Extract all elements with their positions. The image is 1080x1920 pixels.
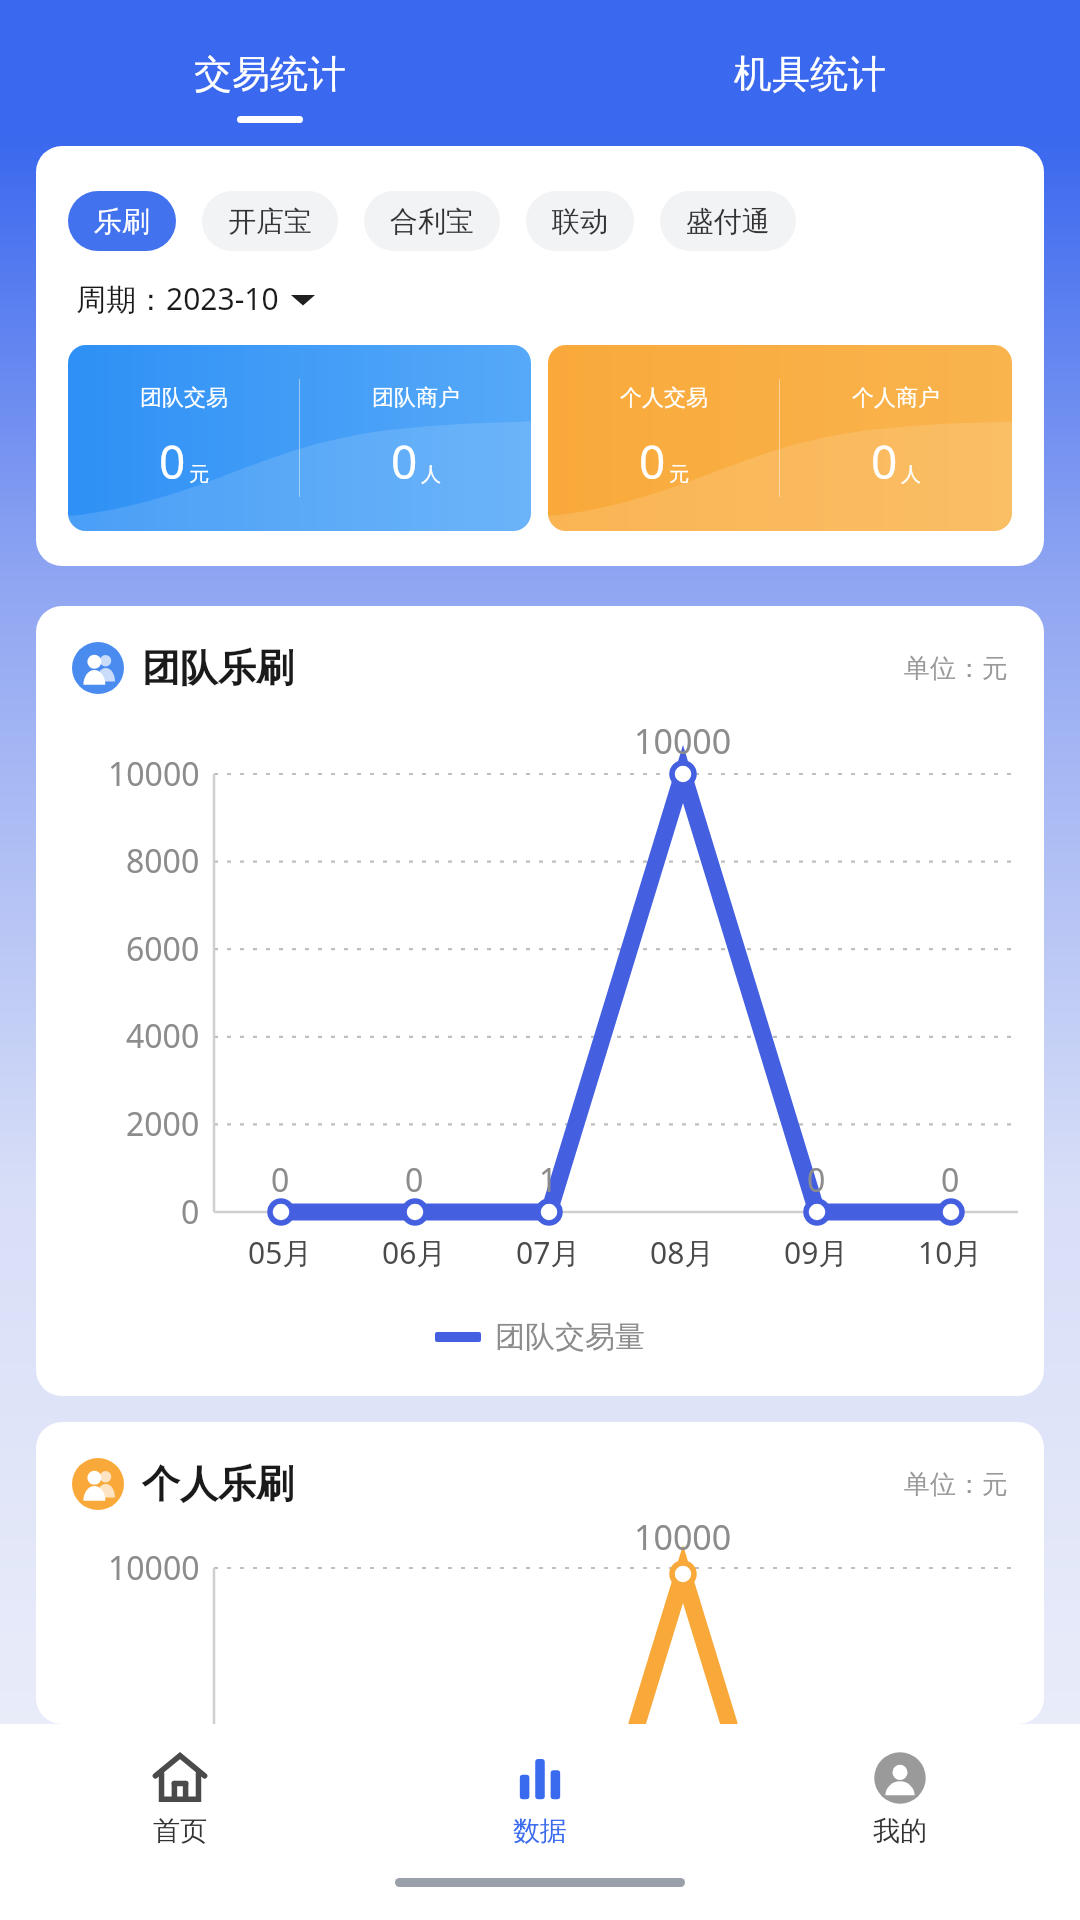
staticText: 盛付通: [686, 204, 770, 239]
staticText: 交易统计: [194, 50, 346, 98]
staticText: 09月: [784, 1232, 849, 1273]
staticText: 机具统计: [734, 50, 886, 98]
button[interactable]: 团队交易: [68, 345, 531, 531]
staticText: 10月: [918, 1232, 983, 1273]
staticText: 1: [539, 1158, 558, 1202]
staticText: 0: [639, 430, 666, 493]
staticText: 6000: [126, 927, 200, 971]
button[interactable]: 合利宝: [364, 191, 500, 251]
staticText: 个人商户: [852, 384, 940, 412]
staticText: 0: [405, 1158, 424, 1202]
staticText: 0: [159, 430, 186, 493]
staticText: 元: [669, 462, 689, 487]
staticText: 团队乐刷: [142, 644, 294, 692]
staticText: 首页: [153, 1814, 207, 1848]
button[interactable]: 周期：2023-10: [76, 278, 315, 319]
staticText: 0: [181, 1190, 200, 1234]
staticText: 合利宝: [390, 204, 474, 239]
staticText: 单位：元: [904, 1468, 1008, 1501]
staticText: 个人乐刷: [142, 1460, 294, 1508]
staticText: 团队交易量: [495, 1318, 645, 1356]
button[interactable]: 乐刷: [68, 191, 176, 251]
button[interactable]: 开店宝: [202, 191, 338, 251]
staticText: 4000: [126, 1014, 200, 1058]
staticText: 联动: [552, 204, 608, 239]
staticText: 团队商户: [372, 384, 460, 412]
button[interactable]: 交易统计: [0, 0, 540, 146]
staticText: 06月: [382, 1232, 447, 1273]
staticText: 开店宝: [228, 204, 312, 239]
staticText: 07月: [516, 1232, 581, 1273]
staticText: 0: [807, 1158, 826, 1202]
staticText: 10000: [108, 752, 200, 796]
staticText: 10000: [634, 718, 732, 764]
staticText: 2000: [126, 1102, 200, 1146]
staticText: 元: [189, 462, 209, 487]
staticText: 10000: [108, 1546, 200, 1590]
staticText: 单位：元: [904, 652, 1008, 685]
staticText: 10000: [634, 1514, 732, 1560]
staticText: 8000: [126, 839, 200, 883]
staticText: 0: [941, 1158, 960, 1202]
staticText: 团队交易: [140, 384, 228, 412]
button[interactable]: 首页: [0, 1724, 360, 1874]
staticText: 人: [901, 462, 921, 487]
staticText: 0: [391, 430, 418, 493]
staticText: 05月: [248, 1232, 313, 1273]
staticText: 人: [421, 462, 441, 487]
staticText: 个人交易: [620, 384, 708, 412]
staticText: 我的: [873, 1814, 927, 1848]
button[interactable]: 数据: [360, 1724, 720, 1874]
staticText: 0: [871, 430, 898, 493]
staticText: 乐刷: [94, 204, 150, 239]
staticText: 数据: [513, 1814, 567, 1848]
button[interactable]: 个人交易: [548, 345, 1012, 531]
button[interactable]: 机具统计: [540, 0, 1080, 146]
button[interactable]: 我的: [720, 1724, 1080, 1874]
button[interactable]: 盛付通: [660, 191, 796, 251]
button[interactable]: 联动: [526, 191, 634, 251]
staticText: 周期：2023-10: [76, 278, 279, 319]
staticText: 08月: [650, 1232, 715, 1273]
staticText: 0: [271, 1158, 290, 1202]
